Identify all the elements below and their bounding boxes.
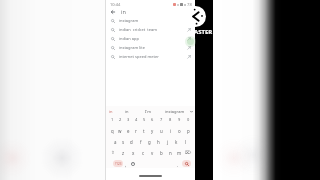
staticText: internet speed meter (119, 54, 159, 59)
button[interactable]: instagram (106, 16, 195, 25)
staticText: instagram (165, 109, 185, 114)
staticText: f (140, 139, 142, 145)
staticText: ?123 (115, 162, 122, 166)
button[interactable]: g (145, 136, 154, 147)
staticText: 0 (187, 117, 190, 122)
staticText: 5 (143, 117, 146, 122)
staticText: b (160, 150, 163, 156)
staticText: instagram lite (119, 45, 145, 50)
staticText: in (121, 8, 126, 15)
staticText: l (185, 139, 187, 145)
button[interactable]: b (157, 147, 166, 158)
button[interactable]: Search (182, 160, 191, 167)
staticText: 7 (160, 117, 163, 122)
button[interactable]: in (125, 109, 145, 114)
staticText: in (109, 109, 113, 114)
staticText: n (169, 150, 172, 156)
staticText: y (151, 128, 154, 134)
button[interactable]: 5 (140, 114, 148, 125)
button[interactable]: 0 (184, 114, 193, 125)
button[interactable]: d (127, 136, 136, 147)
staticText: x (132, 150, 135, 156)
staticText: 1 (111, 117, 114, 122)
staticText: , (125, 162, 127, 168)
staticText: 4 (135, 117, 138, 122)
button[interactable]: z (118, 147, 128, 158)
button[interactable]: ⌦ (184, 147, 193, 158)
button[interactable]: Emoji (131, 162, 135, 166)
button[interactable]: h (154, 136, 163, 147)
staticText: ⇧ (111, 150, 115, 155)
staticText: 8 (169, 117, 172, 122)
staticText: a (114, 139, 117, 145)
button[interactable]: c (138, 147, 148, 158)
button[interactable]: w (116, 125, 124, 136)
staticText: t (143, 128, 145, 134)
button[interactable]: m (175, 147, 184, 158)
staticText: 78 (187, 2, 192, 8)
button[interactable]: I'm (145, 109, 165, 114)
button[interactable]: 9 (175, 114, 184, 125)
button[interactable]: q (108, 125, 116, 136)
staticText: instagram (119, 18, 139, 23)
button[interactable]: 6 (148, 114, 157, 125)
staticText: j (167, 139, 169, 145)
button[interactable]: internet speed meter (106, 52, 195, 61)
button[interactable]: r (132, 125, 140, 136)
staticText: 3 (127, 117, 130, 122)
staticText: e (127, 128, 130, 134)
button[interactable]: 3 (124, 114, 132, 125)
button[interactable]: l (181, 136, 190, 147)
button[interactable]: 7 (157, 114, 166, 125)
staticText: u (160, 128, 163, 134)
staticText: w (118, 128, 122, 134)
button[interactable]: instagram (165, 109, 190, 114)
button[interactable]: indian app (106, 34, 195, 43)
staticText: ⌦ (185, 150, 192, 155)
button[interactable]: u (157, 125, 166, 136)
staticText: i (170, 128, 172, 134)
button[interactable]: 1 (108, 114, 116, 125)
staticText: . (177, 162, 179, 168)
button[interactable]: 8 (166, 114, 175, 125)
button[interactable]: k (172, 136, 181, 147)
button[interactable]: y (148, 125, 157, 136)
button[interactable]: ⇧ (108, 147, 118, 158)
button[interactable]: in (109, 109, 125, 114)
button[interactable]: p (184, 125, 193, 136)
staticText: d (130, 139, 133, 145)
staticText: 10:44 (110, 2, 121, 7)
staticText: indian cricket team (119, 27, 157, 32)
button[interactable]: indian cricket team (106, 25, 195, 34)
staticText: c (142, 150, 145, 156)
staticText: r (135, 128, 137, 134)
staticText: 6 (151, 117, 154, 122)
button[interactable]: j (163, 136, 172, 147)
button[interactable]: Back (109, 8, 116, 15)
button[interactable]: instagram lite (106, 43, 195, 52)
staticText: v (151, 150, 154, 156)
button[interactable]: 4 (132, 114, 140, 125)
button[interactable]: v (148, 147, 157, 158)
staticText: m (177, 150, 182, 156)
button[interactable]: e (124, 125, 132, 136)
staticText: k (175, 139, 178, 145)
button[interactable]: i (166, 125, 175, 136)
staticText: 9 (178, 117, 181, 122)
staticText: q (111, 128, 114, 134)
staticText: s (122, 139, 125, 145)
button[interactable]: o (175, 125, 184, 136)
button[interactable]: f (136, 136, 145, 147)
button[interactable]: a (111, 136, 119, 147)
button[interactable]: 2 (116, 114, 124, 125)
staticText: indian app (119, 36, 139, 41)
staticText: z (122, 150, 125, 156)
staticText: h (157, 139, 160, 145)
button[interactable]: s (119, 136, 127, 147)
button[interactable]: ?123 (113, 160, 123, 167)
button[interactable]: t (140, 125, 148, 136)
button[interactable]: n (166, 147, 175, 158)
button[interactable]: x (128, 147, 138, 158)
staticText: in (125, 109, 129, 114)
staticText: I'm (145, 109, 151, 114)
